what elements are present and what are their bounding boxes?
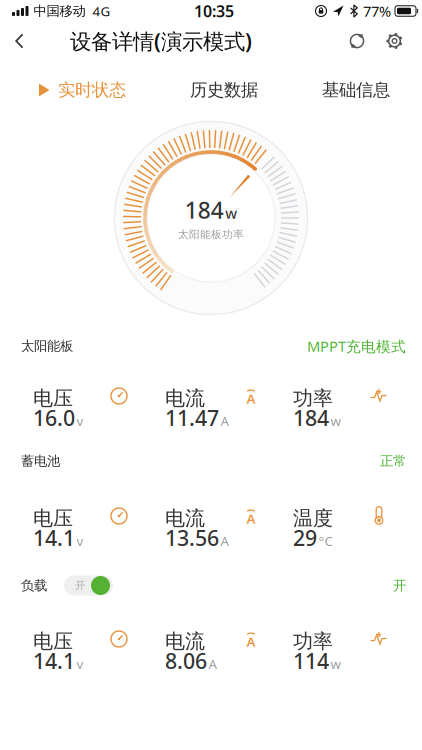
staticText: 历史数据: [190, 79, 258, 101]
staticText: w: [330, 412, 340, 430]
staticText: v: [76, 532, 83, 550]
staticText: 温度: [293, 506, 333, 531]
staticText: 14.1: [33, 647, 75, 675]
staticText: 电流: [165, 506, 205, 531]
staticText: A: [220, 412, 229, 430]
staticText: 8.06: [165, 647, 207, 675]
staticText: 负载: [21, 577, 47, 594]
staticText: A: [246, 510, 255, 527]
staticText: w: [225, 203, 237, 223]
button[interactable]: 设置: [365, 32, 422, 49]
staticText: v: [76, 412, 83, 430]
staticText: 电流: [165, 386, 205, 411]
staticText: 电压: [33, 386, 73, 411]
staticText: A: [208, 655, 217, 673]
button[interactable]: 基础信息: [322, 79, 422, 101]
staticText: 10:35: [194, 0, 234, 22]
staticText: 电流: [165, 629, 205, 654]
staticText: 29: [293, 524, 317, 552]
staticText: 功率: [293, 386, 333, 411]
staticText: 开: [75, 579, 86, 592]
staticText: 电压: [33, 629, 73, 654]
staticText: 184: [185, 195, 224, 225]
staticText: 正常: [380, 453, 406, 469]
staticText: 中国移动: [33, 3, 85, 19]
staticText: 太阳能板功率: [178, 228, 244, 241]
staticText: 16.0: [33, 404, 75, 432]
button[interactable]: 历史数据: [190, 79, 258, 101]
staticText: v: [76, 655, 83, 673]
staticText: 77%: [363, 1, 391, 21]
staticText: 184: [293, 404, 329, 432]
staticText: 4G: [92, 2, 110, 20]
staticText: w: [330, 655, 340, 673]
staticText: 太阳能板: [21, 338, 73, 354]
staticText: 电压: [33, 506, 73, 531]
staticText: A: [220, 532, 229, 550]
staticText: MPPT充电模式: [307, 336, 406, 356]
button[interactable]: 返回: [0, 33, 34, 48]
staticText: 实时状态: [58, 79, 126, 101]
staticText: 蓄电池: [21, 453, 60, 469]
staticText: 14.1: [33, 524, 75, 552]
staticText: 开: [393, 577, 406, 594]
staticText: °C: [318, 532, 332, 550]
staticText: A: [246, 633, 255, 650]
staticText: 11.47: [165, 404, 219, 432]
staticText: 114: [293, 647, 329, 675]
staticText: 功率: [293, 629, 333, 654]
button[interactable]: 刷新: [343, 33, 365, 49]
staticText: 基础信息: [322, 79, 390, 101]
button[interactable]: 负载开关: [64, 575, 113, 596]
staticText: 13.56: [165, 524, 219, 552]
staticText: 设备详情(演示模式): [70, 27, 252, 55]
button[interactable]: 实时状态: [0, 79, 126, 101]
staticText: A: [246, 390, 255, 407]
